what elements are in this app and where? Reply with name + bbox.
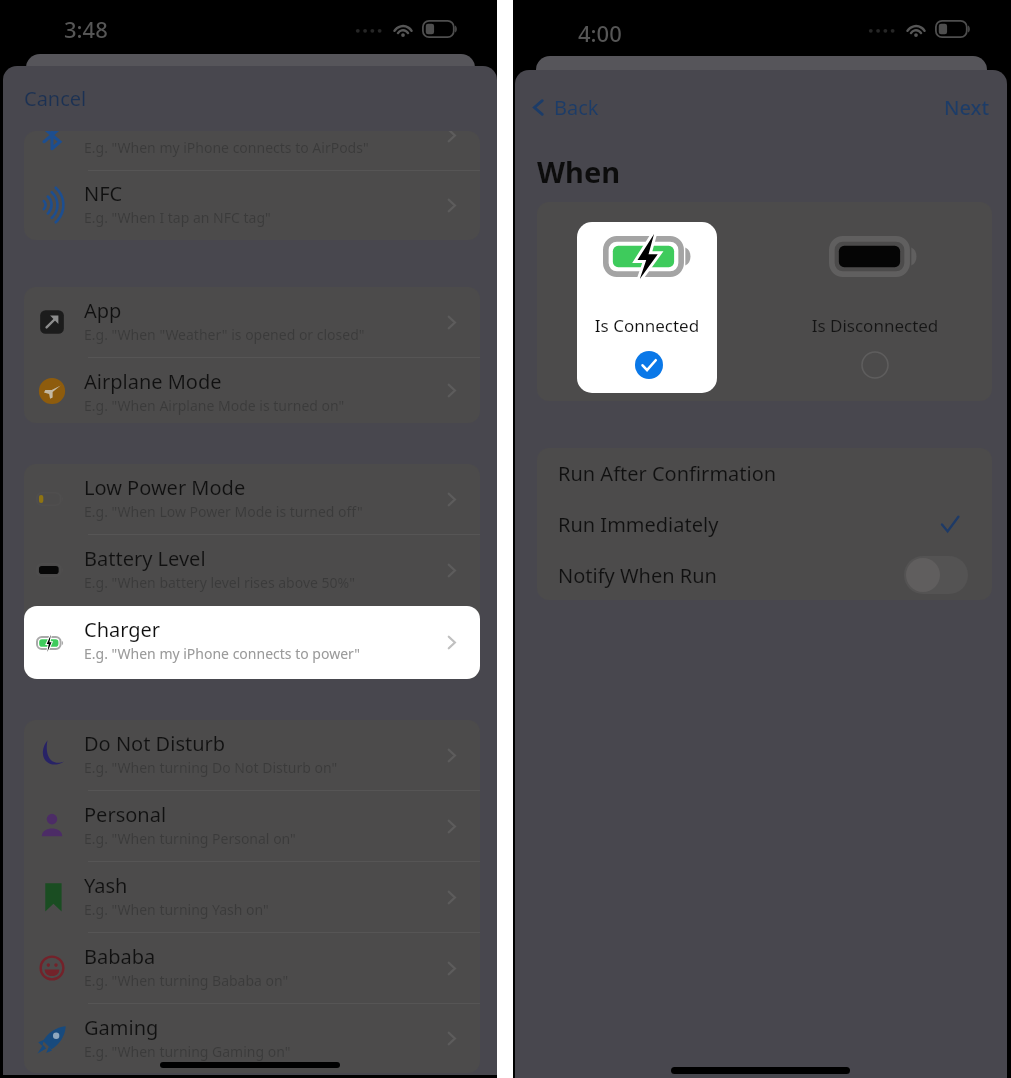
staticText: Run After Confirmation (558, 460, 777, 487)
staticText: E.g. "When turning Yash on" (84, 900, 269, 919)
button[interactable]: Bluetooth (24, 131, 480, 170)
staticText: Is Disconnected (795, 314, 955, 337)
button[interactable]: App (24, 287, 480, 357)
button[interactable]: Next (944, 94, 990, 121)
button[interactable]: Personal (24, 791, 480, 861)
staticText: E.g. "When turning Bababa on" (84, 971, 289, 990)
button[interactable]: Battery Level (24, 535, 480, 605)
button[interactable]: Do Not Disturb (24, 720, 480, 790)
staticText: Run Immediately (558, 511, 719, 538)
staticText: Yash (84, 872, 128, 899)
button[interactable]: Bababa (24, 933, 480, 1003)
staticText: Personal (84, 801, 167, 828)
staticText: Notify When Run (558, 562, 717, 589)
staticText: E.g. "When turning Personal on" (84, 829, 296, 848)
staticText: Battery Level (84, 545, 206, 572)
staticText: NFC (84, 180, 123, 207)
button[interactable]: Is Disconnected (795, 222, 955, 393)
button[interactable]: Gaming (24, 1004, 480, 1073)
button[interactable]: Run Immediately (537, 499, 992, 550)
button[interactable]: NFC (24, 170, 480, 240)
button[interactable]: Run After Confirmation (537, 448, 992, 499)
staticText: E.g. "When I tap an NFC tag" (84, 208, 271, 227)
staticText: Next (944, 94, 990, 121)
button[interactable]: Notify When Run (537, 550, 992, 600)
staticText: Cancel (24, 85, 87, 112)
staticText: Back (554, 94, 599, 121)
staticText: Is Connected (577, 314, 717, 337)
staticText: Airplane Mode (84, 368, 222, 395)
button[interactable]: Yash (24, 862, 480, 932)
staticText: E.g. "When my iPhone connects to AirPods… (84, 138, 369, 157)
staticText: When (537, 152, 621, 191)
staticText: Gaming (84, 1014, 159, 1041)
staticText: E.g. "When Airplane Mode is turned on" (84, 396, 345, 415)
staticText: Bababa (84, 943, 156, 970)
staticText: E.g. "When battery level rises above 50%… (84, 573, 355, 592)
button[interactable]: Charger (24, 606, 480, 679)
button[interactable]: Low Power Mode (24, 464, 480, 534)
staticText: E.g. "When turning Do Not Disturb on" (84, 758, 338, 777)
button[interactable]: Cancel (24, 85, 87, 112)
staticText: E.g. "When turning Gaming on" (84, 1042, 291, 1061)
button[interactable]: Is Connected (577, 222, 717, 393)
button[interactable]: Airplane Mode (24, 358, 480, 423)
button[interactable]: Back (529, 94, 599, 121)
staticText: Low Power Mode (84, 474, 246, 501)
staticText: E.g. "When Low Power Mode is turned off" (84, 502, 363, 521)
staticText: Do Not Disturb (84, 730, 226, 757)
staticText: E.g. "When "Weather" is opened or closed… (84, 325, 365, 344)
staticText: Charger (84, 616, 161, 643)
staticText: App (84, 297, 122, 324)
staticText: E.g. "When my iPhone connects to power" (84, 644, 361, 663)
staticText: 3:48 (64, 14, 108, 44)
staticText: 4:00 (578, 18, 622, 48)
